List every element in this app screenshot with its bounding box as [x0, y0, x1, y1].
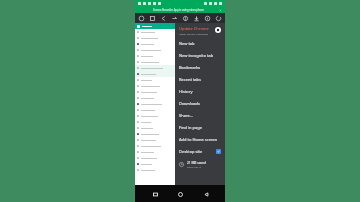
- staticText: Add to Home screen: [179, 137, 218, 142]
- button[interactable]: Bookmarks: [179, 61, 221, 73]
- button[interactable]: [137, 65, 173, 71]
- button[interactable]: 21 MB saved: [179, 157, 221, 171]
- button[interactable]: Reload: [214, 14, 223, 23]
- button[interactable]: [137, 113, 173, 119]
- button[interactable]: Add to Home screen: [179, 133, 221, 145]
- staticText: Bookmarks: [179, 65, 201, 70]
- staticText: 21 MB saved: [187, 161, 206, 165]
- button[interactable]: New incognito tab: [179, 49, 221, 61]
- button[interactable]: [137, 47, 173, 53]
- button[interactable]: Screen Recorder App is using microphone: [135, 7, 225, 13]
- button[interactable]: [137, 83, 173, 89]
- staticText: New incognito tab: [179, 53, 214, 58]
- button[interactable]: Share...: [179, 109, 221, 121]
- button[interactable]: [137, 161, 173, 167]
- staticText: History: [179, 89, 193, 94]
- button[interactable]: [137, 89, 173, 95]
- button[interactable]: [137, 35, 173, 41]
- button[interactable]: Home: [137, 14, 146, 23]
- button[interactable]: [137, 131, 173, 137]
- button[interactable]: [137, 167, 173, 173]
- button[interactable]: [137, 125, 173, 131]
- button[interactable]: Recents: [149, 188, 161, 200]
- button[interactable]: [137, 95, 173, 101]
- button[interactable]: [137, 59, 173, 65]
- staticText: since Aug 14: [187, 165, 202, 168]
- staticText: Screen Recorder App is using microphone: [153, 8, 204, 12]
- button[interactable]: [137, 29, 173, 35]
- button[interactable]: Downloads: [179, 97, 221, 109]
- button[interactable]: Back: [200, 188, 212, 200]
- staticText: Downloads: [179, 101, 200, 106]
- button[interactable]: Settings: [215, 27, 221, 33]
- button[interactable]: Download: [192, 14, 201, 23]
- button[interactable]: [137, 101, 173, 107]
- button[interactable]: [137, 41, 173, 47]
- button[interactable]: [137, 53, 173, 59]
- button[interactable]: Find in page: [179, 121, 221, 133]
- button[interactable]: [137, 77, 173, 83]
- staticText: Recent tabs: [179, 77, 201, 82]
- button[interactable]: New tab: [179, 37, 221, 49]
- button[interactable]: [137, 119, 173, 125]
- button[interactable]: [137, 149, 173, 155]
- staticText: Newer version is available: [179, 32, 209, 35]
- staticText: Desktop site: [179, 149, 216, 154]
- button[interactable]: [137, 143, 173, 149]
- button[interactable]: [137, 107, 173, 113]
- button[interactable]: Back: [159, 14, 168, 23]
- button[interactable]: [137, 71, 173, 77]
- button[interactable]: Forward: [170, 14, 179, 23]
- staticText: New tab: [179, 41, 195, 46]
- button[interactable]: [137, 137, 173, 143]
- staticText: Find in page: [179, 125, 203, 130]
- button[interactable]: Update Chrome: [179, 23, 221, 37]
- button[interactable]: Home: [174, 188, 186, 200]
- staticText: Share...: [179, 113, 193, 118]
- button[interactable]: Recent tabs: [179, 73, 221, 85]
- button[interactable]: [137, 23, 173, 29]
- button[interactable]: Tabs: [148, 14, 157, 23]
- button[interactable]: Desktop site: [179, 145, 221, 157]
- button[interactable]: Info: [203, 14, 212, 23]
- button[interactable]: Bookmark: [181, 14, 190, 23]
- button[interactable]: [137, 155, 173, 161]
- button[interactable]: History: [179, 85, 221, 97]
- staticText: Update Chrome: [179, 26, 209, 31]
